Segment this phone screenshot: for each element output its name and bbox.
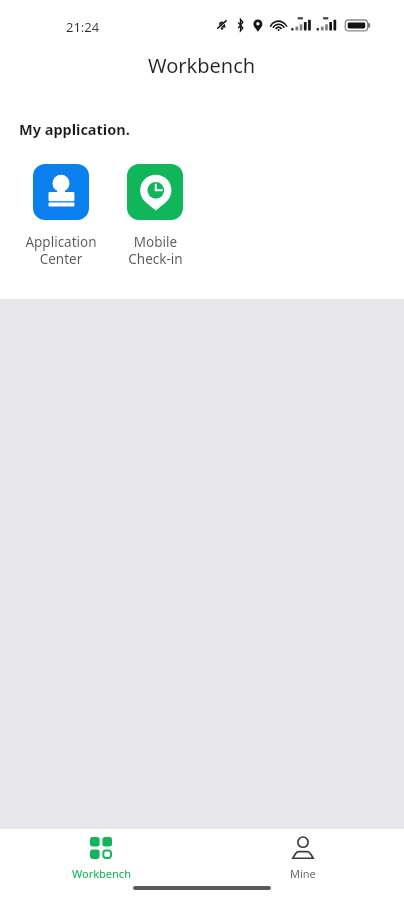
button[interactable]: Application Center	[14, 164, 108, 268]
other: Mine	[292, 837, 314, 859]
button[interactable]: Workbench	[0, 829, 202, 900]
staticText: Mine	[290, 866, 316, 881]
staticText: Mobile Check-in	[128, 233, 183, 268]
staticText: Workbench	[148, 52, 256, 79]
button[interactable]: Mobile Check-in	[108, 164, 202, 268]
button[interactable]: Mine	[202, 829, 404, 900]
staticText: 21:24	[66, 18, 100, 36]
staticText: Workbench	[72, 866, 131, 881]
staticText: My application.	[19, 119, 130, 139]
staticText: Application Center	[25, 233, 97, 268]
